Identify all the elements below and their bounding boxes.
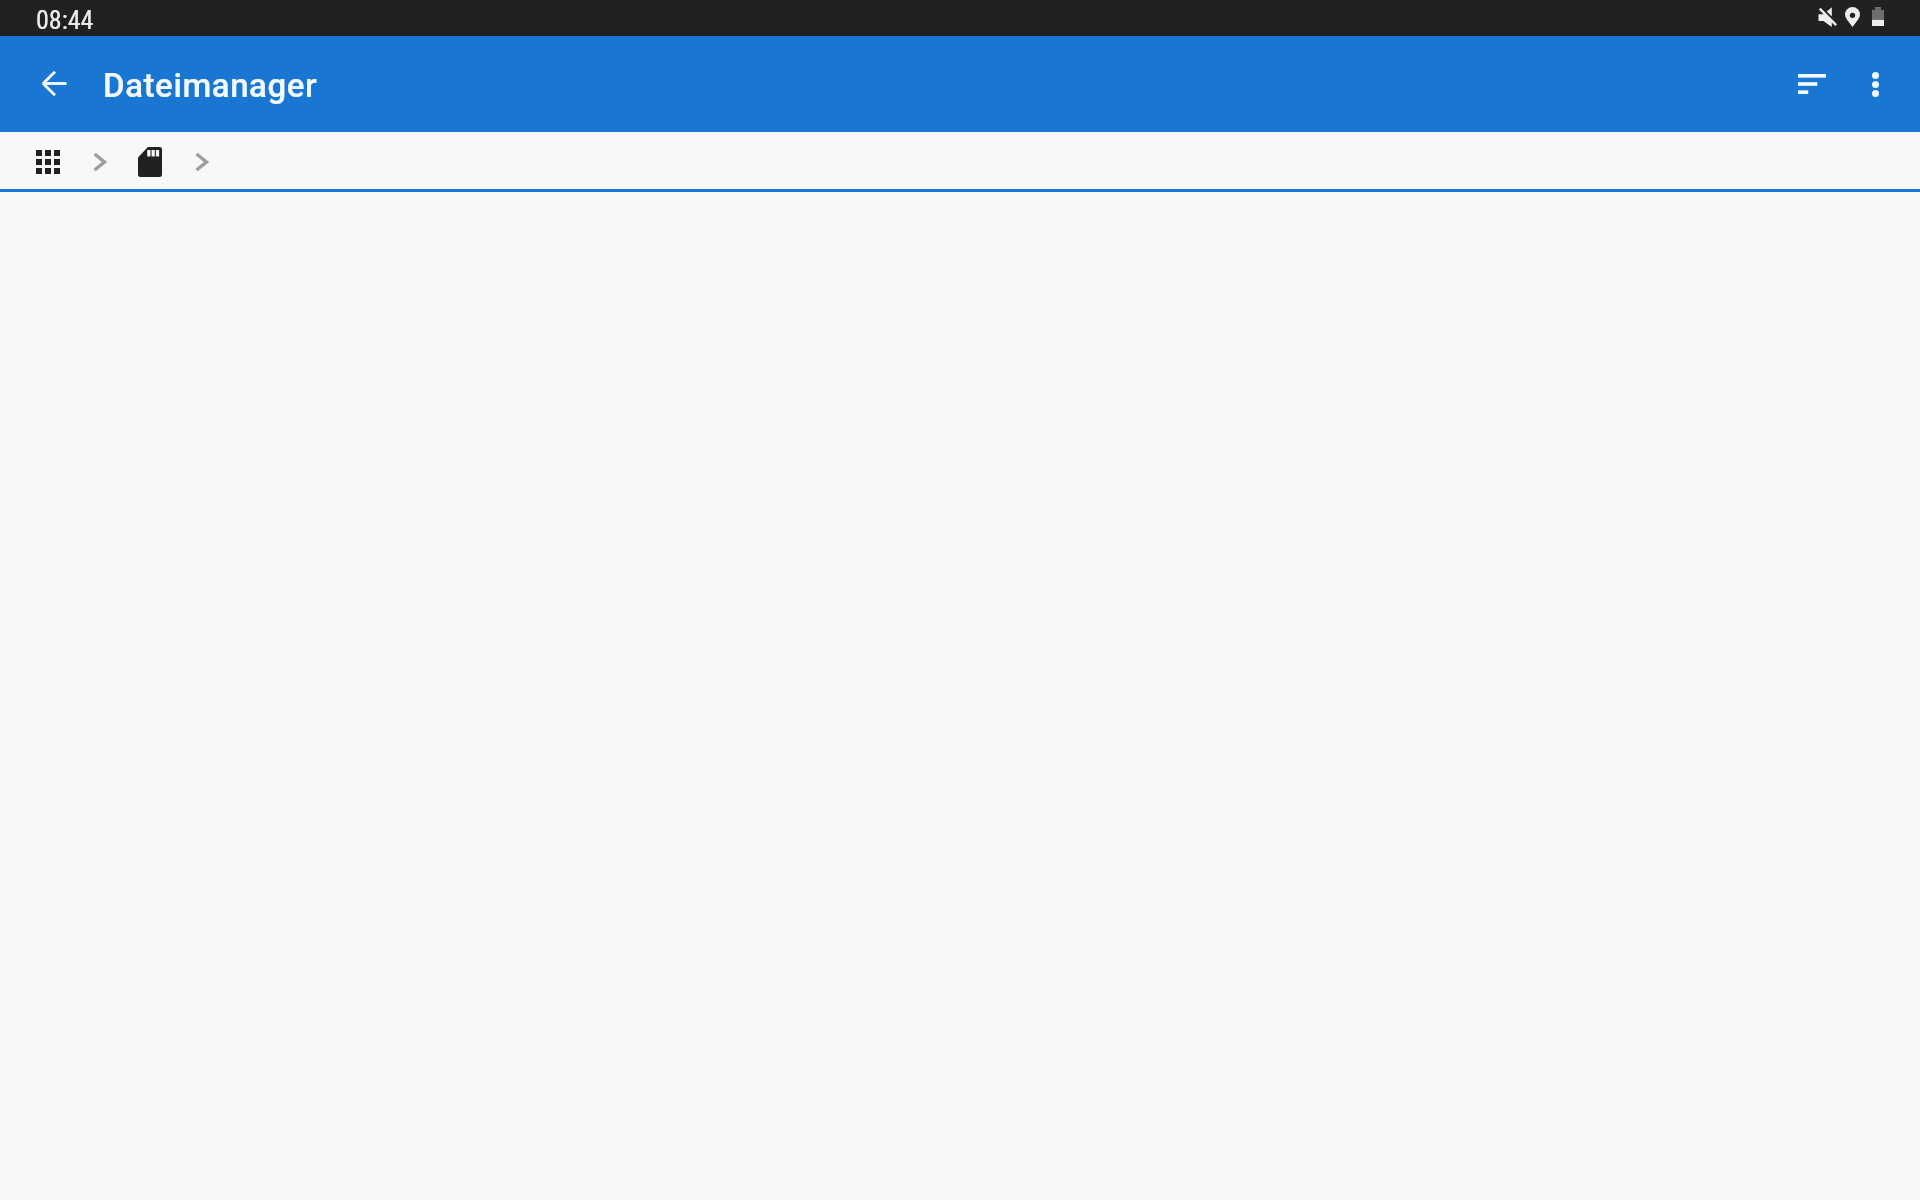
staticText: 08:44 (36, 5, 94, 35)
staticText: Dateimanager (103, 66, 318, 105)
button[interactable]: Back (30, 59, 78, 107)
button[interactable]: SD card (126, 138, 174, 186)
button[interactable]: More options (1851, 60, 1899, 108)
other: Location (1845, 7, 1860, 27)
other: Battery (1872, 7, 1884, 26)
other: Silent mode (1815, 5, 1839, 29)
button[interactable]: Sort (1788, 60, 1836, 108)
button[interactable]: Storage list (24, 138, 72, 186)
